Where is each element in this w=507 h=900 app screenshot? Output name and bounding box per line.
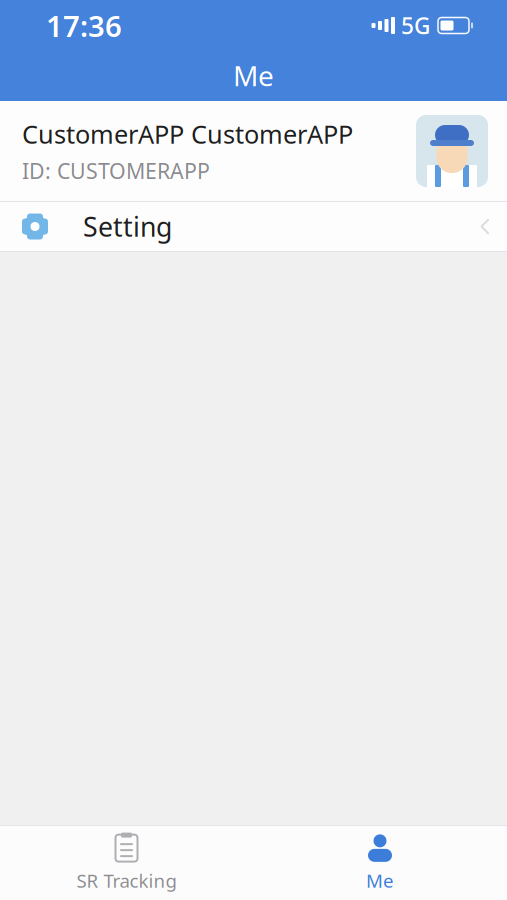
button[interactable]: SR Tracking xyxy=(0,826,253,900)
staticText: Setting xyxy=(83,209,172,244)
button[interactable]: Setting xyxy=(0,202,507,251)
button[interactable]: Me xyxy=(253,826,507,900)
button[interactable]: CustomerAPP CustomerAPP xyxy=(0,101,507,201)
staticText: SR Tracking xyxy=(76,868,176,893)
staticText: ID: CUSTOMERAPP xyxy=(22,157,210,185)
staticText: 17:36 xyxy=(46,6,122,45)
staticText: Me xyxy=(233,57,274,94)
staticText: Me xyxy=(366,868,394,893)
staticText: 5G xyxy=(401,10,430,40)
staticText: CustomerAPP CustomerAPP xyxy=(22,117,353,151)
